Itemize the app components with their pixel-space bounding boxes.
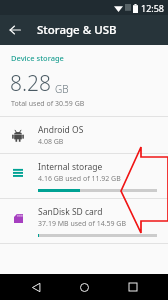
- staticText: Device storage: [11, 53, 64, 63]
- staticText: 8.28: [10, 69, 52, 98]
- button[interactable]: Android OS: [0, 117, 168, 153]
- staticText: 37.19 MB used of 14.59 GB: [38, 219, 127, 229]
- staticText: Android OS: [38, 124, 84, 136]
- staticText: Total used of 30.59 GB: [11, 99, 85, 109]
- staticText: 12:58: [141, 2, 165, 14]
- button[interactable]: Back: [23, 274, 49, 300]
- staticText: GB: [55, 82, 69, 96]
- button[interactable]: Navigate up: [0, 15, 30, 45]
- staticText: Internal storage: [38, 161, 103, 173]
- staticText: 4.08 GB: [38, 137, 64, 147]
- button[interactable]: SanDisk SD card: [0, 199, 168, 243]
- staticText: Storage & USB: [37, 22, 117, 38]
- button[interactable]: Internal storage: [0, 154, 168, 198]
- button[interactable]: Home: [71, 274, 97, 300]
- staticText: SanDisk SD card: [38, 206, 103, 218]
- staticText: 4.16 GB used of 11.92 GB: [38, 174, 121, 184]
- button[interactable]: Recent apps: [120, 274, 146, 300]
